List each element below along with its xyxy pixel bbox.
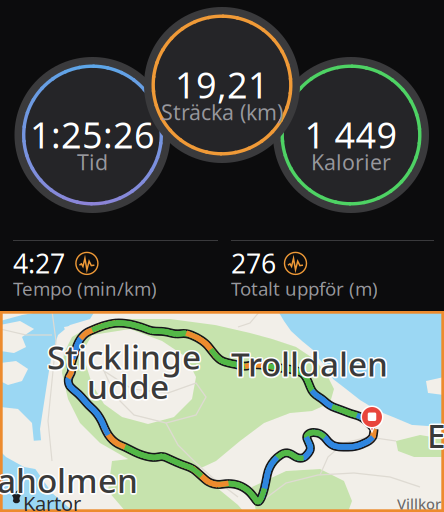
staticText: udde [88, 365, 170, 409]
staticText: aholmen [0, 457, 137, 501]
staticText: 19,21 [175, 61, 269, 108]
staticText: Sticklinge [46, 333, 200, 378]
staticText: 276 [231, 245, 276, 281]
staticText: aholmen [0, 456, 138, 501]
staticText: Sticklinge [47, 336, 201, 380]
staticText: E [429, 413, 444, 457]
staticText: Sticklinge [47, 333, 201, 377]
staticText: aholmen [0, 459, 139, 503]
staticText: aholmen [0, 458, 138, 502]
staticText: udde [86, 365, 168, 409]
staticText: aholmen [0, 460, 138, 504]
staticText: Sticklinge [49, 334, 203, 379]
staticText: Sträcka (km) [161, 98, 283, 126]
staticText: Tid [77, 148, 108, 176]
staticText: Sticklinge [48, 336, 202, 380]
staticText: E [428, 414, 444, 458]
staticText: E [426, 414, 444, 458]
staticText: udde [87, 364, 169, 408]
staticText: Trolldalen [231, 341, 388, 386]
staticText: 1:25:26 [30, 111, 155, 158]
staticText: Totalt uppför (m) [231, 276, 378, 301]
staticText: E [428, 412, 444, 456]
staticText: udde [88, 363, 170, 407]
staticText: 1 449 [304, 111, 397, 158]
staticText: Trolldalen [232, 340, 389, 385]
staticText: Sticklinge [45, 334, 199, 379]
staticText: Trolldalen [232, 343, 389, 387]
staticText: Villkor [397, 494, 441, 512]
staticText: Trolldalen [230, 343, 387, 387]
staticText: Sticklinge [47, 334, 201, 379]
staticText: Kalorier [311, 148, 391, 176]
staticText: udde [87, 362, 169, 407]
staticText: aholmen [0, 457, 139, 501]
staticText: Tempo (min/km) [13, 276, 157, 301]
staticText: Trolldalen [230, 340, 387, 385]
staticText: aholmen [0, 458, 140, 502]
staticText: E [427, 413, 444, 457]
staticText: E [427, 415, 444, 459]
staticText: Kartor [23, 490, 81, 512]
staticText: E [426, 412, 444, 456]
staticText: Trolldalen [233, 341, 390, 386]
staticText: Sticklinge [46, 336, 200, 380]
staticText: E [427, 411, 444, 456]
button[interactable]: 4:27 [13, 228, 218, 300]
staticText: aholmen [0, 459, 137, 503]
staticText: Trolldalen [229, 341, 386, 386]
staticText: 4:27 [13, 245, 65, 281]
staticText: Sticklinge [48, 333, 202, 378]
button[interactable]: 276 [231, 228, 434, 300]
staticText: Trolldalen [231, 340, 388, 384]
staticText: udde [85, 364, 167, 408]
staticText: udde [86, 363, 168, 407]
staticText: udde [89, 364, 171, 408]
staticText: udde [87, 366, 169, 410]
staticText: Trolldalen [231, 343, 388, 387]
staticText: aholmen [0, 458, 136, 502]
staticText: E [425, 413, 444, 457]
